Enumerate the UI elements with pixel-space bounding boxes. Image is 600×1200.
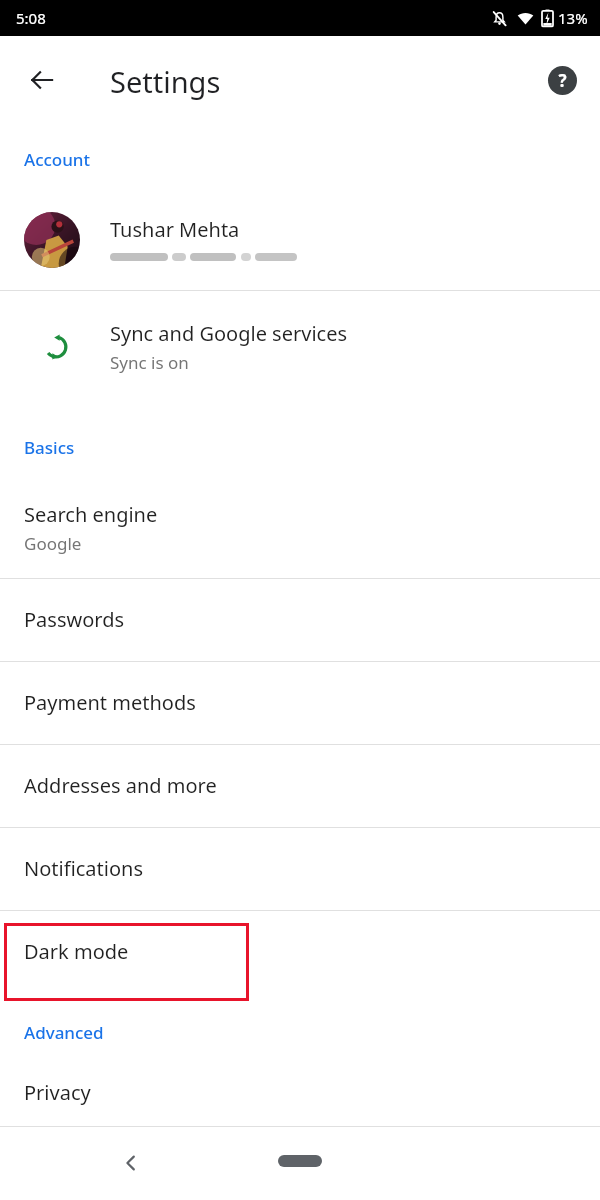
button[interactable]: Notifications	[0, 827, 600, 910]
button[interactable]: Tushar Mehta	[0, 190, 600, 290]
button[interactable]: Back	[107, 1139, 155, 1187]
button[interactable]: Addresses and more	[0, 744, 600, 827]
staticText: 13%	[558, 8, 588, 28]
button[interactable]: Privacy	[0, 1058, 600, 1126]
button[interactable]: Sync and Google services	[0, 291, 600, 403]
button[interactable]: Back	[18, 56, 66, 104]
staticText: Basics	[24, 436, 75, 459]
staticText: 5:08	[16, 8, 46, 28]
staticText: Google	[24, 532, 82, 555]
staticText: ?	[558, 69, 567, 92]
button[interactable]: Passwords	[0, 578, 600, 661]
staticText: Search engine	[24, 501, 158, 528]
staticText: Sync is on	[110, 351, 189, 374]
button[interactable]: Search engine	[0, 478, 600, 578]
staticText: Privacy	[24, 1079, 91, 1106]
button[interactable]: Dark mode	[0, 910, 600, 993]
staticText: Dark mode	[24, 938, 129, 965]
staticText: Settings	[110, 62, 221, 101]
button[interactable]: Help	[538, 56, 586, 104]
button[interactable]: Home	[270, 1145, 330, 1177]
staticText: Advanced	[24, 1021, 104, 1044]
button[interactable]: Payment methods	[0, 661, 600, 744]
staticText: Addresses and more	[24, 772, 217, 799]
staticText: Account	[24, 148, 91, 171]
staticText: Notifications	[24, 855, 143, 882]
staticText: Payment methods	[24, 689, 196, 716]
staticText: Passwords	[24, 606, 125, 633]
staticText: Sync and Google services	[110, 320, 348, 347]
staticText: Tushar Mehta	[110, 216, 240, 243]
